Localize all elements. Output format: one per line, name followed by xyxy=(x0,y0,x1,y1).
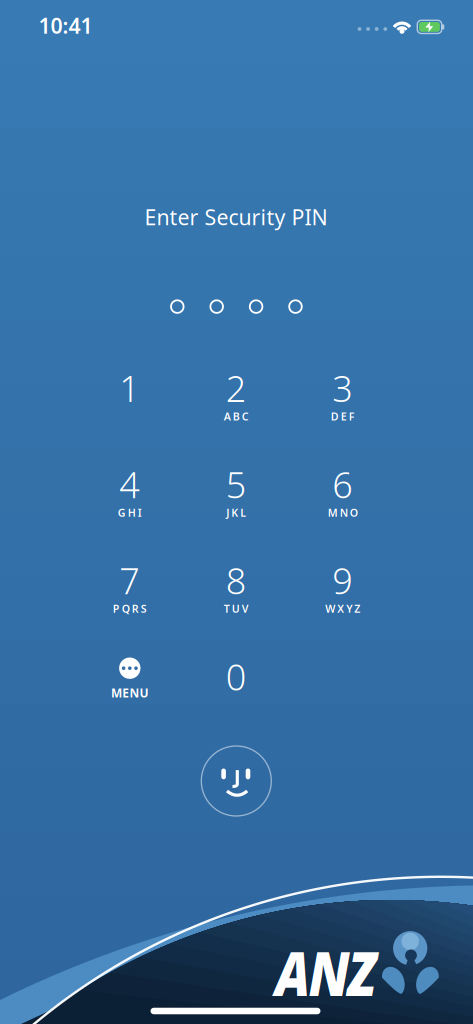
staticText: 3 xyxy=(332,364,353,412)
staticText: M N O xyxy=(328,505,358,520)
staticText: 0 xyxy=(226,653,247,700)
staticText: D E F xyxy=(331,409,355,423)
button[interactable]: 3 xyxy=(291,352,395,440)
staticText: 5 xyxy=(226,460,247,508)
staticText: 2 xyxy=(226,364,247,412)
staticText: A B C xyxy=(224,409,249,423)
button[interactable]: 8 xyxy=(184,544,288,632)
button[interactable]: 2 xyxy=(184,352,288,440)
button[interactable]: 9 xyxy=(291,544,395,632)
staticText: MENU xyxy=(111,685,149,701)
button[interactable]: 0 xyxy=(184,641,288,729)
staticText: 9 xyxy=(332,556,353,604)
button[interactable]: Menu xyxy=(78,640,182,716)
staticText: 8 xyxy=(226,556,247,604)
staticText: 7 xyxy=(119,556,140,604)
staticText: 6 xyxy=(332,460,353,508)
staticText: G H I xyxy=(118,505,142,520)
staticText: J K L xyxy=(226,505,246,520)
button[interactable]: 4 xyxy=(78,448,182,536)
staticText: 4 xyxy=(119,460,140,508)
button[interactable]: 7 xyxy=(78,544,182,632)
button[interactable]: 5 xyxy=(184,448,288,536)
staticText: T U V xyxy=(224,602,249,616)
staticText: P Q R S xyxy=(113,602,147,616)
button[interactable]: 6 xyxy=(291,448,395,536)
staticText: W X Y Z xyxy=(325,602,360,616)
staticText: ANZ xyxy=(266,932,385,1013)
button[interactable]: Face ID xyxy=(200,745,272,817)
staticText: 10:41 xyxy=(38,11,92,39)
staticText: 1 xyxy=(119,364,140,412)
staticText: Enter Security PIN xyxy=(145,203,328,231)
button[interactable]: 1 xyxy=(78,352,182,440)
